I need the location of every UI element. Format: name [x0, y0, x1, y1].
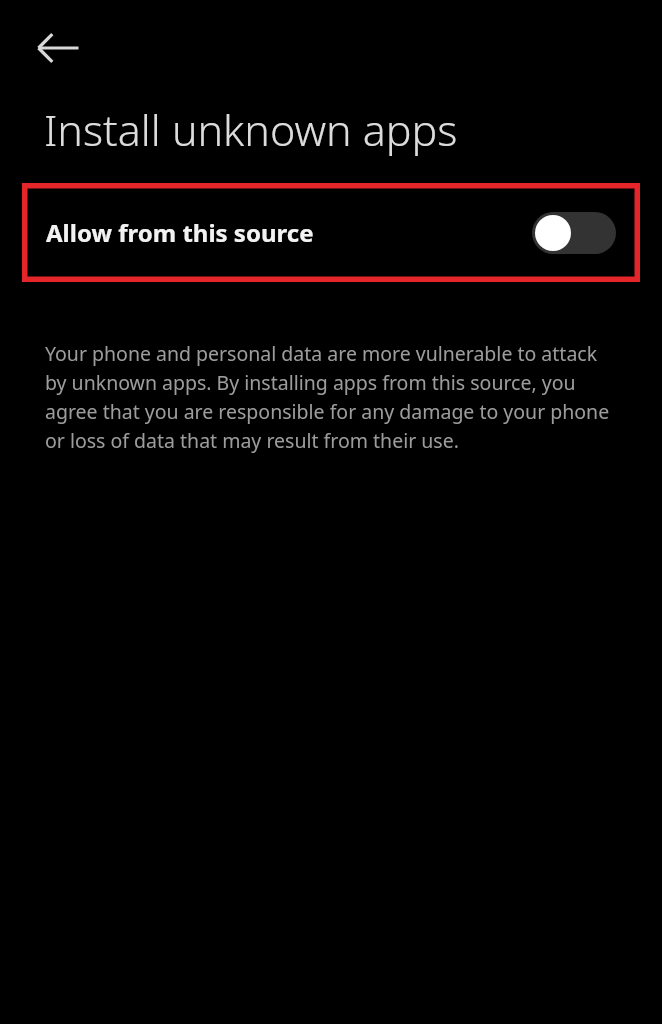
staticText: Your phone and personal data are more vu… [45, 340, 622, 453]
staticText: Install unknown apps [44, 100, 458, 159]
button[interactable]: Allow from this source [22, 183, 640, 282]
button[interactable]: Back [32, 22, 84, 74]
staticText: Allow from this source [46, 216, 314, 249]
button[interactable]: Allow from this source toggle [532, 212, 616, 254]
